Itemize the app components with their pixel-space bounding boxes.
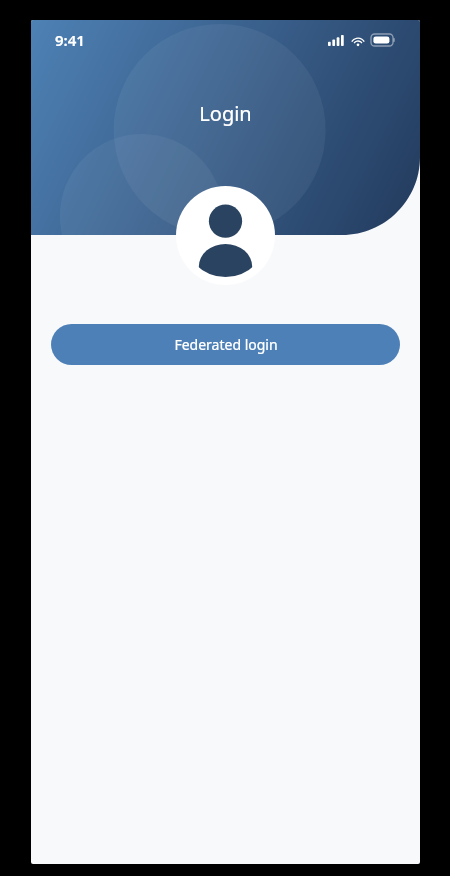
button[interactable]: Federated login [51,324,400,365]
staticText: 9:41 [55,30,85,50]
staticText: Federated login [174,335,278,354]
staticText: Login [31,100,420,127]
